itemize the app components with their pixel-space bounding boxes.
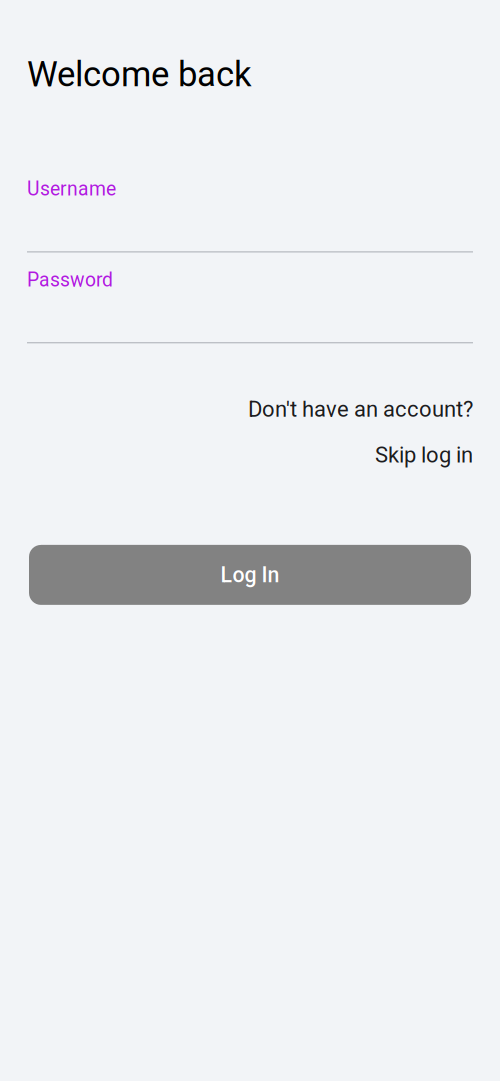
button[interactable]: Skip log in bbox=[0, 442, 500, 468]
staticText: Username bbox=[27, 178, 116, 200]
staticText: Log In bbox=[220, 562, 279, 587]
staticText: Skip log in bbox=[375, 442, 473, 468]
button[interactable]: Log In bbox=[0, 545, 500, 605]
button[interactable]: Don't have an account? bbox=[0, 396, 500, 422]
staticText: Welcome back bbox=[27, 54, 252, 95]
staticText: Don't have an account? bbox=[248, 396, 473, 422]
staticText: Password bbox=[27, 268, 113, 291]
